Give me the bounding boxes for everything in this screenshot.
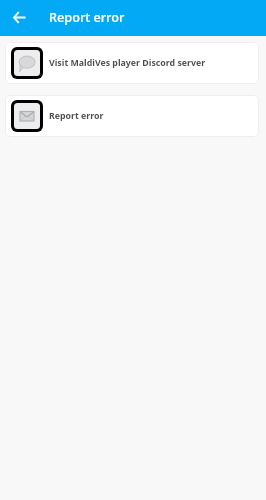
staticText: Visit MaldiVes player Discord server (49, 57, 206, 69)
button[interactable]: Report error (5, 95, 259, 137)
button[interactable]: Visit MaldiVes player Discord server (5, 42, 259, 84)
staticText: Report error (49, 110, 104, 122)
button[interactable]: Back (0, 0, 39, 36)
staticText: Report error (49, 8, 125, 25)
